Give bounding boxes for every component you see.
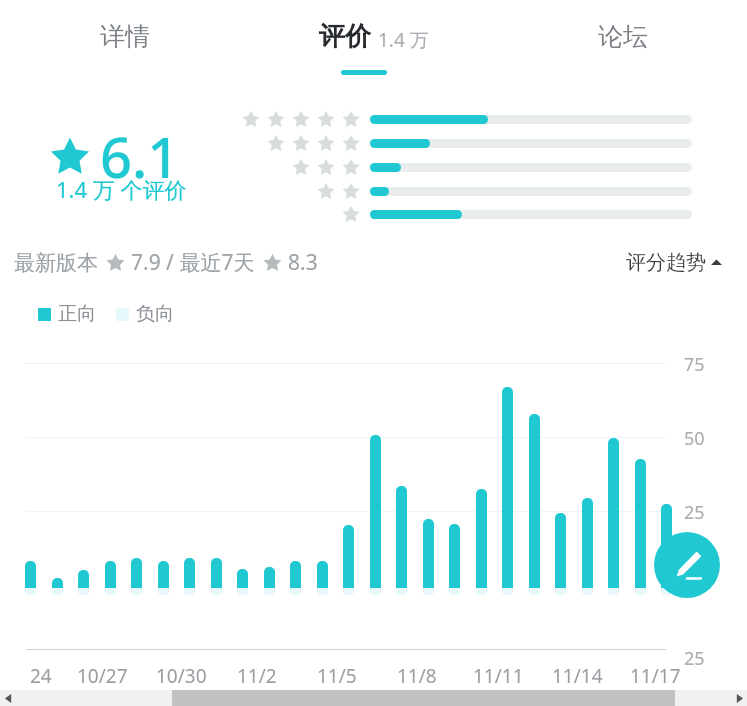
staticText: 论坛: [598, 21, 648, 52]
staticText: 负向: [136, 302, 174, 326]
staticText: 11/14: [552, 663, 603, 689]
button[interactable]: Scroll right: [731, 690, 747, 706]
staticText: 10/27: [77, 663, 128, 689]
staticText: 详情: [100, 21, 150, 52]
staticText: 最新版本: [14, 250, 98, 276]
button[interactable]: 评分趋势: [626, 250, 722, 275]
staticText: 10/30: [156, 663, 207, 689]
staticText: 7.9 / 最近7天: [131, 248, 255, 277]
staticText: 11/2: [237, 663, 277, 689]
staticText: 1.4 万: [378, 27, 429, 53]
staticText: 正向: [58, 302, 96, 326]
staticText: 6.1: [100, 118, 180, 194]
staticText: 11/11: [473, 663, 524, 689]
staticText: 75: [684, 352, 705, 377]
staticText: 25: [684, 646, 705, 671]
staticText: 24: [30, 663, 52, 689]
staticText: 8.3: [288, 248, 318, 277]
button[interactable]: 评价: [249, 0, 498, 72]
button[interactable]: 论坛: [498, 0, 747, 72]
staticText: 11/8: [397, 663, 437, 689]
staticText: 1.4 万 个评价: [56, 174, 187, 204]
staticText: 评价: [319, 20, 371, 53]
button[interactable]: Scroll left: [0, 690, 16, 706]
button[interactable]: 详情: [0, 0, 249, 72]
button[interactable]: Write a review: [654, 532, 720, 598]
staticText: 25: [684, 500, 705, 525]
staticText: 11/5: [317, 663, 357, 689]
staticText: 11/17: [630, 663, 681, 689]
staticText: 50: [684, 426, 705, 451]
staticText: 评分趋势: [626, 250, 706, 275]
